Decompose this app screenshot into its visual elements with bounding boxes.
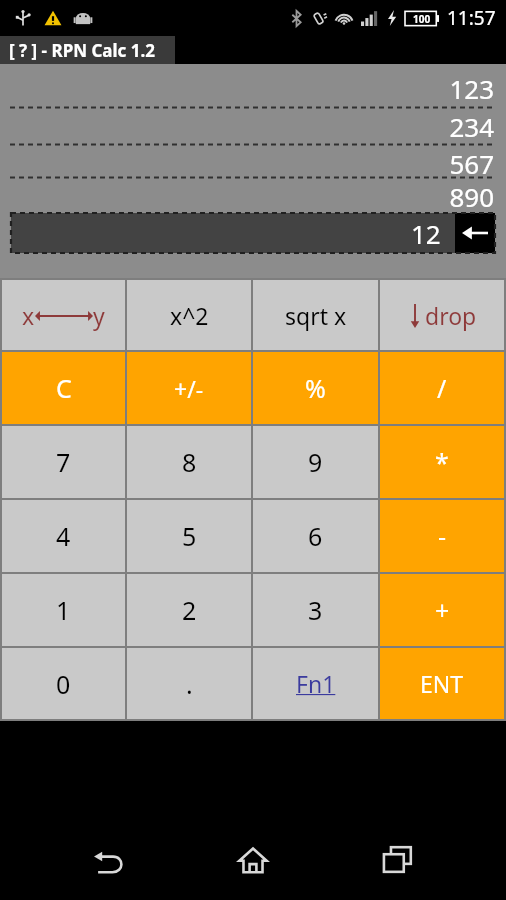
button[interactable]: / [380,352,504,424]
button[interactable]: 2 [127,574,251,646]
staticText: % [305,371,326,405]
button[interactable]: - [380,500,504,572]
staticText: y [93,300,105,331]
button[interactable]: 3 [253,574,378,646]
button[interactable]: x [2,280,125,350]
button[interactable]: . [127,648,251,719]
staticText: 890 [449,179,494,211]
staticText: sqrt x [285,300,347,331]
button[interactable]: 0 [2,648,125,719]
button[interactable]: 890 [0,179,506,211]
button[interactable]: 8 [127,426,251,498]
staticText: 1 [56,593,71,627]
staticText: x [22,300,35,331]
staticText: [ ? ] - RPN Calc 1.2 [9,39,156,62]
staticText: Fn1 [296,668,336,699]
button[interactable]: 9 [253,426,378,498]
button[interactable]: drop [380,280,504,350]
staticText: drop [425,300,477,331]
button[interactable]: 7 [2,426,125,498]
button[interactable]: Recent apps [362,824,434,896]
staticText: / [437,371,447,405]
button[interactable]: Fn1 [253,648,378,719]
button[interactable]: 5 [127,500,251,572]
staticText: 11:57 [447,5,496,31]
button[interactable]: % [253,352,378,424]
button[interactable]: 6 [253,500,378,572]
button[interactable]: sqrt x [253,280,378,350]
button[interactable]: +/- [127,352,251,424]
staticText: 123 [449,71,494,106]
staticText: 5 [182,519,197,553]
staticText: C [56,371,72,405]
staticText: 234 [449,109,494,143]
button[interactable]: 12 [11,213,455,253]
staticText: 100 [413,12,431,26]
button[interactable]: Backspace [455,213,495,253]
staticText: 9 [308,445,323,479]
staticText: + [435,593,450,627]
button[interactable]: Back [73,824,145,896]
staticText: 8 [182,445,197,479]
staticText: 2 [182,593,197,627]
button[interactable]: + [380,574,504,646]
staticText: 0 [56,667,71,701]
button[interactable]: 234 [0,109,506,143]
staticText: +/- [174,373,204,404]
staticText: * [435,445,449,479]
button[interactable]: Home [217,824,289,896]
button[interactable]: 123 [0,70,506,106]
staticText: x^2 [170,300,209,331]
staticText: 12 [411,216,441,251]
button[interactable]: 567 [0,146,506,176]
staticText: 7 [56,445,71,479]
staticText: 6 [308,519,323,553]
staticText: - [438,519,447,553]
button[interactable]: * [380,426,504,498]
button[interactable]: x^2 [127,280,251,350]
button[interactable]: 4 [2,500,125,572]
button[interactable]: C [2,352,125,424]
staticText: . [186,667,193,701]
staticText: 567 [449,146,494,176]
staticText: 4 [56,519,71,553]
staticText: ENT [420,668,464,699]
button[interactable]: ENT [380,648,504,719]
button[interactable]: 1 [2,574,125,646]
staticText: 3 [308,593,323,627]
